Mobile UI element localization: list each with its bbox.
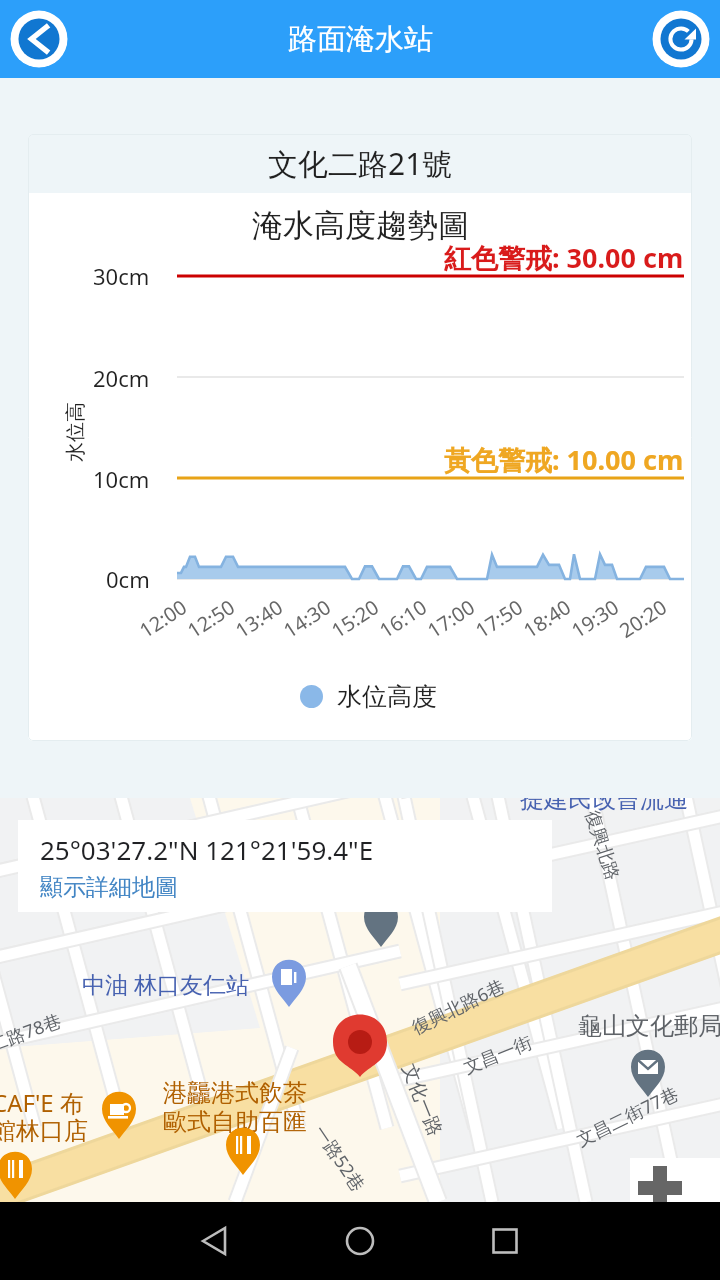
staticText: 12:00 [134,593,192,644]
staticText: 12:50 [182,593,240,644]
button[interactable]: Refresh [652,10,710,68]
staticText: 紅色警戒: 30.00 cm [444,239,684,276]
staticText: 歐式自助百匯 [163,1107,307,1137]
staticText: 25°03'27.2"N 121°21'59.4"E [40,832,374,867]
staticText: 20cm [93,363,150,393]
staticText: CAF'E 布 [0,1086,84,1119]
staticText: 19:30 [566,593,624,644]
staticText: 水位高度 [337,681,437,712]
staticText: 0cm [106,564,150,594]
staticText: 龜山文化郵局 [578,1011,720,1041]
button[interactable]: 25°03'27.2"N 121°21'59.4"E [18,820,552,912]
staticText: 30cm [93,261,150,291]
staticText: 館林口店 [0,1116,88,1146]
button[interactable]: Back [10,10,68,68]
staticText: 17:00 [422,593,480,644]
staticText: 20:20 [614,593,672,644]
button[interactable]: Back [180,1202,252,1280]
staticText: 18:40 [518,593,576,644]
staticText: 港龘港式飲茶 [163,1078,307,1108]
staticText: 顯示詳細地圖 [40,873,178,902]
staticText: 路面淹水站 [288,21,433,58]
staticText: 水位高 [63,402,87,462]
staticText: 文化二路21號 [268,143,453,184]
staticText: 復興北路6巷 [408,973,509,1040]
button[interactable]: Zoom in [630,1158,720,1202]
staticText: 文化一路 [397,1060,447,1140]
staticText: 13:40 [230,593,288,644]
staticText: 16:10 [374,593,432,644]
staticText: 復興北路 [580,808,624,883]
staticText: 文昌一街 [460,1031,536,1080]
staticText: 14:30 [278,593,336,644]
staticText: 提建民改曾流通 [520,798,688,814]
staticText: 一路52巷 [308,1120,371,1197]
staticText: 10cm [93,464,150,494]
staticText: 文昌二街77巷 [572,1081,683,1152]
staticText: 15:20 [326,593,384,644]
staticText: 17:50 [470,593,528,644]
staticText: 二路78巷 [0,1008,65,1057]
staticText: 淹水高度趨勢圖 [252,206,469,245]
button[interactable]: Home [324,1202,396,1280]
button[interactable]: Recent apps [469,1202,541,1280]
staticText: 中油 林口友仁站 [82,968,249,999]
staticText: 黃色警戒: 10.00 cm [444,441,684,478]
